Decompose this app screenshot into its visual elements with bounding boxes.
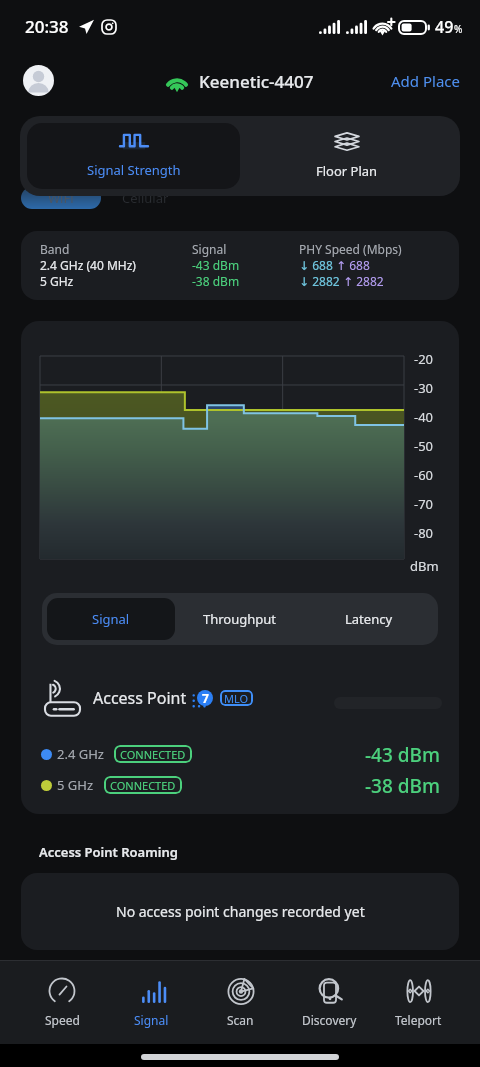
staticText: -70	[414, 495, 434, 513]
staticText: CONNECTED	[110, 778, 176, 793]
staticText: Scan	[227, 1012, 254, 1028]
button[interactable]: Signal	[47, 598, 175, 640]
staticText: Add Place	[391, 71, 460, 91]
staticText: -50	[414, 437, 434, 455]
staticText: Keenetic-4407	[199, 70, 314, 93]
staticText: ↑ 688	[336, 257, 370, 273]
staticText: Floor Plan	[316, 162, 378, 180]
staticText: 2.4 GHz	[57, 745, 104, 763]
staticText: Signal	[192, 241, 227, 257]
staticText: dBm	[410, 557, 439, 575]
staticText: WiFi	[48, 189, 74, 207]
staticText: PHY Speed (Mbps)	[299, 241, 402, 257]
button[interactable]: Signal	[107, 961, 196, 1044]
staticText: Cellular	[122, 189, 169, 207]
staticText: No access point changes recorded yet	[116, 902, 365, 921]
staticText: 5 GHz	[57, 776, 94, 794]
staticText: Signal	[134, 1012, 169, 1028]
staticText: -43 dBm	[365, 742, 440, 766]
staticText: -20	[414, 350, 434, 368]
staticText: Discovery	[302, 1012, 357, 1028]
button[interactable]: WiFi	[21, 187, 101, 209]
button[interactable]: Latency	[304, 598, 433, 640]
button[interactable]: Scan	[196, 961, 285, 1044]
staticText: ↓ 688	[299, 257, 336, 273]
staticText: CONNECTED	[120, 747, 186, 762]
staticText: Teleport	[395, 1012, 442, 1028]
staticText: Speed	[45, 1012, 80, 1028]
staticText: Signal Strength	[87, 161, 181, 179]
staticText: Access Point	[93, 687, 187, 709]
button[interactable]: Profile	[23, 65, 54, 96]
staticText: -30	[414, 379, 434, 397]
staticText: -60	[414, 466, 434, 484]
staticText: -80	[414, 524, 434, 542]
staticText: Throughput	[203, 610, 277, 628]
staticText: ↑ 2882	[343, 273, 384, 289]
button[interactable]: Add Place	[391, 71, 460, 91]
staticText: ↓ 2882	[299, 273, 343, 289]
staticText: 20:38	[25, 15, 69, 38]
staticText: -40	[414, 408, 434, 426]
staticText: 2.4 GHz (40 MHz)	[40, 257, 136, 273]
button[interactable]: Discovery	[285, 961, 374, 1044]
staticText: 7	[202, 690, 209, 706]
staticText: MLO	[224, 691, 249, 706]
button[interactable]: Throughput	[175, 598, 304, 640]
staticText: Latency	[345, 610, 393, 628]
button[interactable]: Speed	[17, 961, 107, 1044]
button[interactable]: Cellular	[101, 187, 189, 209]
staticText: 5 GHz	[40, 273, 74, 289]
staticText: -38 dBm	[365, 773, 440, 797]
staticText: %	[454, 22, 463, 36]
staticText: Access Point Roaming	[39, 843, 178, 861]
button[interactable]: Signal Strength	[27, 123, 240, 189]
staticText: -38 dBm	[192, 273, 240, 289]
staticText: 49	[435, 16, 454, 38]
button[interactable]: Floor Plan	[240, 123, 453, 189]
staticText: -43 dBm	[192, 257, 240, 273]
staticText: Band	[40, 241, 70, 257]
button[interactable]: Teleport	[374, 961, 463, 1044]
staticText: Signal	[92, 610, 130, 628]
